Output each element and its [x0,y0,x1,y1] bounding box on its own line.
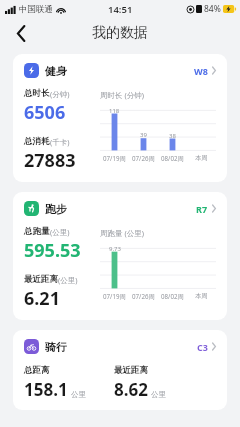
staticText: R7 [196,203,208,215]
staticText: 07/26周 [132,292,155,300]
staticText: 27883 [24,148,76,173]
staticText: 总距离 [24,365,50,376]
staticText: 6.21 [24,286,60,311]
staticText: (千卡) [50,137,70,147]
staticText: 08/02周 [161,154,184,162]
staticText: 07/19周 [103,154,126,162]
button[interactable]: 骑行 [13,330,227,410]
staticText: 14:51 [108,3,133,16]
staticText: 健身 [45,64,67,78]
button[interactable]: 跑步 [13,192,227,320]
staticText: 39 [140,131,147,139]
button[interactable]: 健身 [13,54,227,182]
staticText: 158.1 [24,378,68,401]
button[interactable]: 骑行 [24,339,216,354]
staticText: 118 [109,107,120,115]
staticText: 38 [169,132,176,140]
staticText: 595.53 [24,238,81,263]
staticText: 8.62 [114,378,148,401]
staticText: 中国联通 [19,4,53,15]
staticText: 总消耗 [24,136,50,147]
staticText: W8 [194,65,208,77]
staticText: 总时长 [24,88,50,99]
staticText: 07/19周 [103,292,126,300]
staticText: (公里) [50,227,70,237]
staticText: 9.73 [109,245,121,253]
staticText: C3 [197,341,208,353]
staticText: 我的数据 [92,24,148,42]
staticText: 跑步 [45,202,67,216]
staticText: 周跑量 (公里) [100,228,144,238]
staticText: 本周 [195,292,208,300]
staticText: 周时长 (分钟) [100,90,144,100]
staticText: 07/26周 [132,154,155,162]
staticText: 最近距离 [24,274,58,285]
staticText: 公里 [71,390,86,399]
staticText: 6506 [24,100,66,125]
staticText: 84% [204,3,221,15]
staticText: 最近距离 [114,365,148,376]
staticText: 总跑量 [24,226,50,237]
staticText: 08/02周 [161,292,184,300]
staticText: (公里) [58,275,78,285]
staticText: (分钟) [50,89,70,99]
button[interactable]: 健身 [24,63,216,78]
staticText: 公里 [151,390,166,399]
staticText: 骑行 [45,340,67,354]
button[interactable]: 跑步 [24,201,216,216]
staticText: 本周 [195,154,208,162]
button[interactable]: Back [10,22,32,44]
